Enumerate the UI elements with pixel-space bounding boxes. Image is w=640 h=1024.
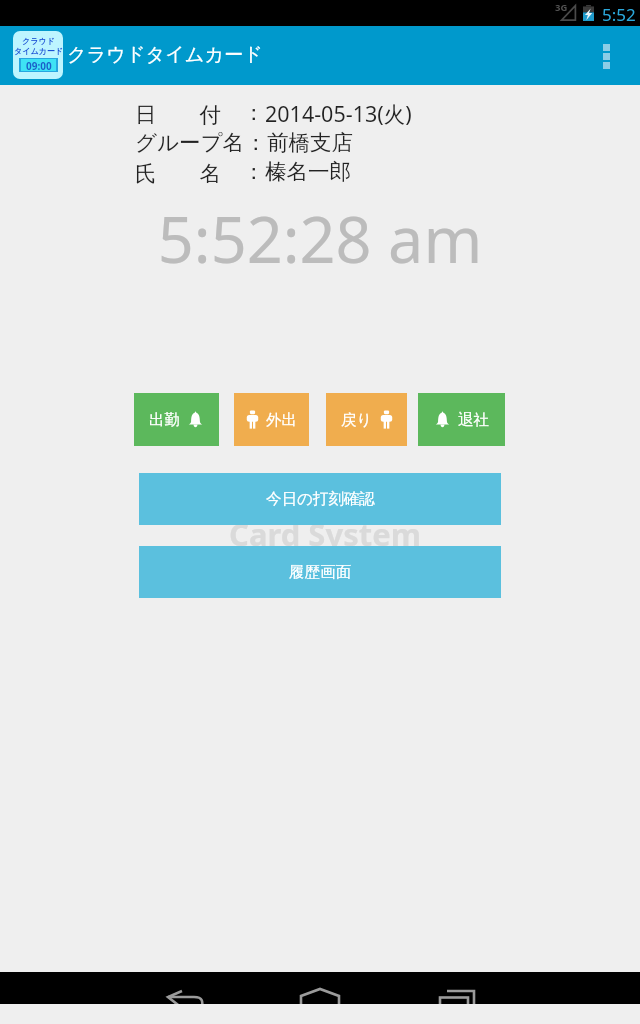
staticText: ： (243, 99, 265, 126)
button[interactable]: 退社 (418, 393, 505, 446)
staticText: 履歴画面 (289, 562, 351, 582)
staticText: タイムカード (14, 46, 63, 56)
staticText: 戻り (341, 410, 373, 430)
staticText: 5:52:28 am (0, 196, 640, 282)
button[interactable]: Home (213, 972, 427, 1004)
staticText: Card System (229, 513, 421, 555)
staticText: 09:00 (26, 59, 52, 71)
staticText: グループ名 (135, 129, 245, 156)
button[interactable]: 履歴画面 (139, 546, 501, 598)
button[interactable]: 出勤 (134, 393, 219, 446)
staticText: ： (245, 129, 267, 156)
staticText: クラウドタイムカード (67, 43, 263, 67)
button[interactable]: 今日の打刻確認 (139, 473, 501, 525)
staticText: 5:52 (602, 3, 636, 26)
staticText: 今日の打刻確認 (266, 489, 375, 509)
button[interactable]: 外出 (234, 393, 309, 446)
button[interactable]: More options (582, 26, 630, 85)
staticText: 前橋支店 (267, 129, 353, 156)
staticText: 氏 名 (135, 158, 243, 187)
staticText: ： (243, 158, 265, 185)
staticText: 退社 (458, 410, 489, 430)
staticText: 3G (555, 1, 568, 14)
staticText: 出勤 (149, 410, 180, 430)
staticText: クラウド (22, 36, 55, 46)
staticText: 2014-05-13(火) (265, 99, 412, 128)
staticText: 日 付 (135, 99, 243, 128)
button[interactable]: Back (107, 972, 320, 1004)
staticText: 外出 (266, 410, 297, 430)
staticText: 榛名一郎 (265, 158, 351, 185)
button[interactable]: 戻り (326, 393, 407, 446)
button[interactable]: Recents (320, 972, 533, 1004)
